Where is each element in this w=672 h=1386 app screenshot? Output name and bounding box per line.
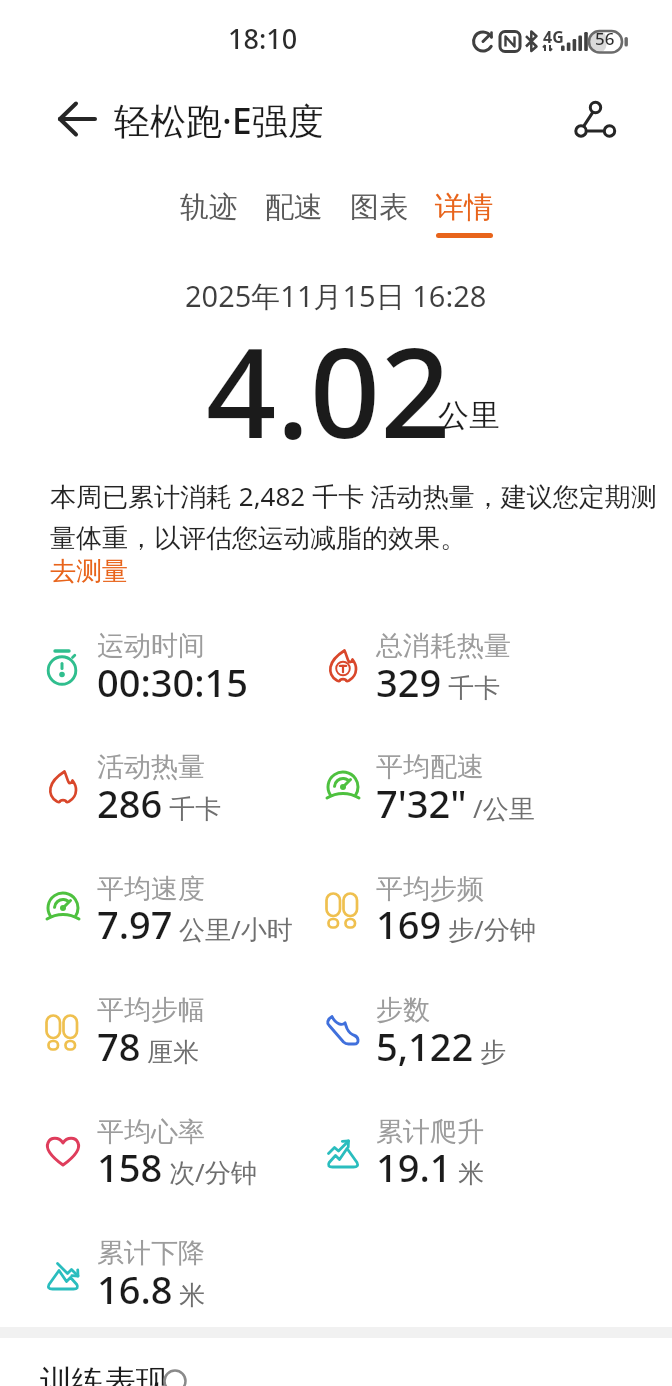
- staticText: 次/分钟: [169, 1154, 257, 1190]
- staticText: 4G: [543, 26, 564, 48]
- staticText: 千卡: [169, 793, 221, 826]
- staticText: 详情: [435, 189, 493, 226]
- button[interactable]: [44, 96, 96, 144]
- staticText: 平均速度: [97, 872, 205, 906]
- staticText: 329: [376, 656, 442, 708]
- button[interactable]: 图表: [350, 189, 408, 238]
- staticText: 7.97: [97, 898, 173, 950]
- staticText: 7'32": [376, 777, 467, 829]
- button[interactable]: 详情: [435, 189, 493, 238]
- staticText: /公里: [473, 790, 535, 826]
- staticText: 轨迹: [180, 189, 238, 226]
- staticText: 步数: [376, 993, 430, 1027]
- staticText: 步: [480, 1036, 506, 1069]
- staticText: 活动热量: [97, 750, 205, 784]
- button[interactable]: 轨迹: [180, 189, 238, 238]
- staticText: 平均步频: [376, 872, 484, 906]
- staticText: 78: [97, 1020, 141, 1072]
- staticText: 158: [97, 1141, 163, 1193]
- staticText: 图表: [350, 189, 408, 226]
- staticText: 累计下降: [97, 1236, 205, 1270]
- staticText: 00:30:15: [97, 656, 249, 708]
- button[interactable]: 配速: [265, 189, 323, 238]
- staticText: 去测量: [50, 555, 128, 588]
- staticText: 公里: [438, 396, 500, 435]
- staticText: 平均配速: [376, 750, 484, 784]
- staticText: 4.02: [206, 307, 451, 475]
- staticText: 配速: [265, 189, 323, 226]
- staticText: 平均心率: [97, 1115, 205, 1149]
- staticText: 169: [376, 898, 442, 950]
- staticText: 总消耗热量: [376, 629, 511, 663]
- staticText: 19.1: [376, 1141, 452, 1193]
- staticText: 米: [458, 1157, 484, 1190]
- staticText: 平均步幅: [97, 993, 205, 1027]
- staticText: 2025年11月15日 16:28: [185, 276, 487, 316]
- button[interactable]: 去测量: [44, 549, 134, 594]
- staticText: 56: [595, 27, 615, 50]
- staticText: 本周已累计消耗 2,482 千卡 活动热量，建议您定期测量体重，以评估您运动减脂…: [50, 478, 664, 554]
- staticText: 训练表现: [40, 1362, 168, 1386]
- staticText: 步/分钟: [448, 911, 536, 947]
- staticText: 5,122: [376, 1020, 474, 1072]
- staticText: 千卡: [448, 672, 500, 705]
- button[interactable]: [566, 92, 626, 148]
- staticText: 厘米: [147, 1036, 199, 1069]
- staticText: 米: [179, 1279, 205, 1312]
- staticText: 轻松跑·E强度: [114, 96, 324, 145]
- staticText: 公里/小时: [179, 911, 293, 947]
- staticText: 286: [97, 777, 163, 829]
- staticText: 运动时间: [97, 629, 205, 663]
- staticText: 18:10: [228, 20, 298, 57]
- staticText: 16.8: [97, 1263, 173, 1315]
- staticText: 累计爬升: [376, 1115, 484, 1149]
